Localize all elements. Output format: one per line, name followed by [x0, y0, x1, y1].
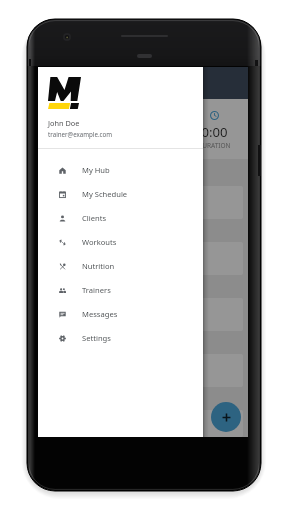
staticText: Settings: [82, 333, 111, 343]
staticText: DURATION: [197, 141, 231, 150]
staticText: Messages: [82, 309, 118, 319]
button[interactable]: Nutrition: [38, 254, 203, 278]
staticText: Nutrition: [82, 261, 115, 271]
button[interactable]: Clients: [38, 206, 203, 230]
staticText: Workout: [67, 76, 113, 91]
staticText: John Doe: [48, 118, 80, 128]
staticText: Clients: [82, 213, 107, 223]
button[interactable]: Messages: [38, 302, 203, 326]
button[interactable]: Workouts: [38, 230, 203, 254]
button[interactable]: Add exercise: [211, 402, 241, 432]
button[interactable]: Open navigation menu: [46, 78, 57, 89]
staticText: trainer@example.com: [48, 130, 113, 138]
staticText: My Hub: [82, 165, 110, 175]
button[interactable]: My Hub: [38, 158, 203, 182]
staticText: SETS: [70, 141, 85, 150]
staticText: 0: [74, 123, 82, 141]
staticText: Workouts: [82, 237, 117, 247]
button[interactable]: Settings: [38, 326, 203, 350]
button[interactable]: Trainers: [38, 278, 203, 302]
button[interactable]: My Schedule: [38, 182, 203, 206]
staticText: VOLUME: [133, 141, 160, 150]
staticText: My Schedule: [82, 189, 128, 199]
staticText: 0:00: [201, 123, 228, 141]
staticText: Trainers: [82, 285, 111, 295]
